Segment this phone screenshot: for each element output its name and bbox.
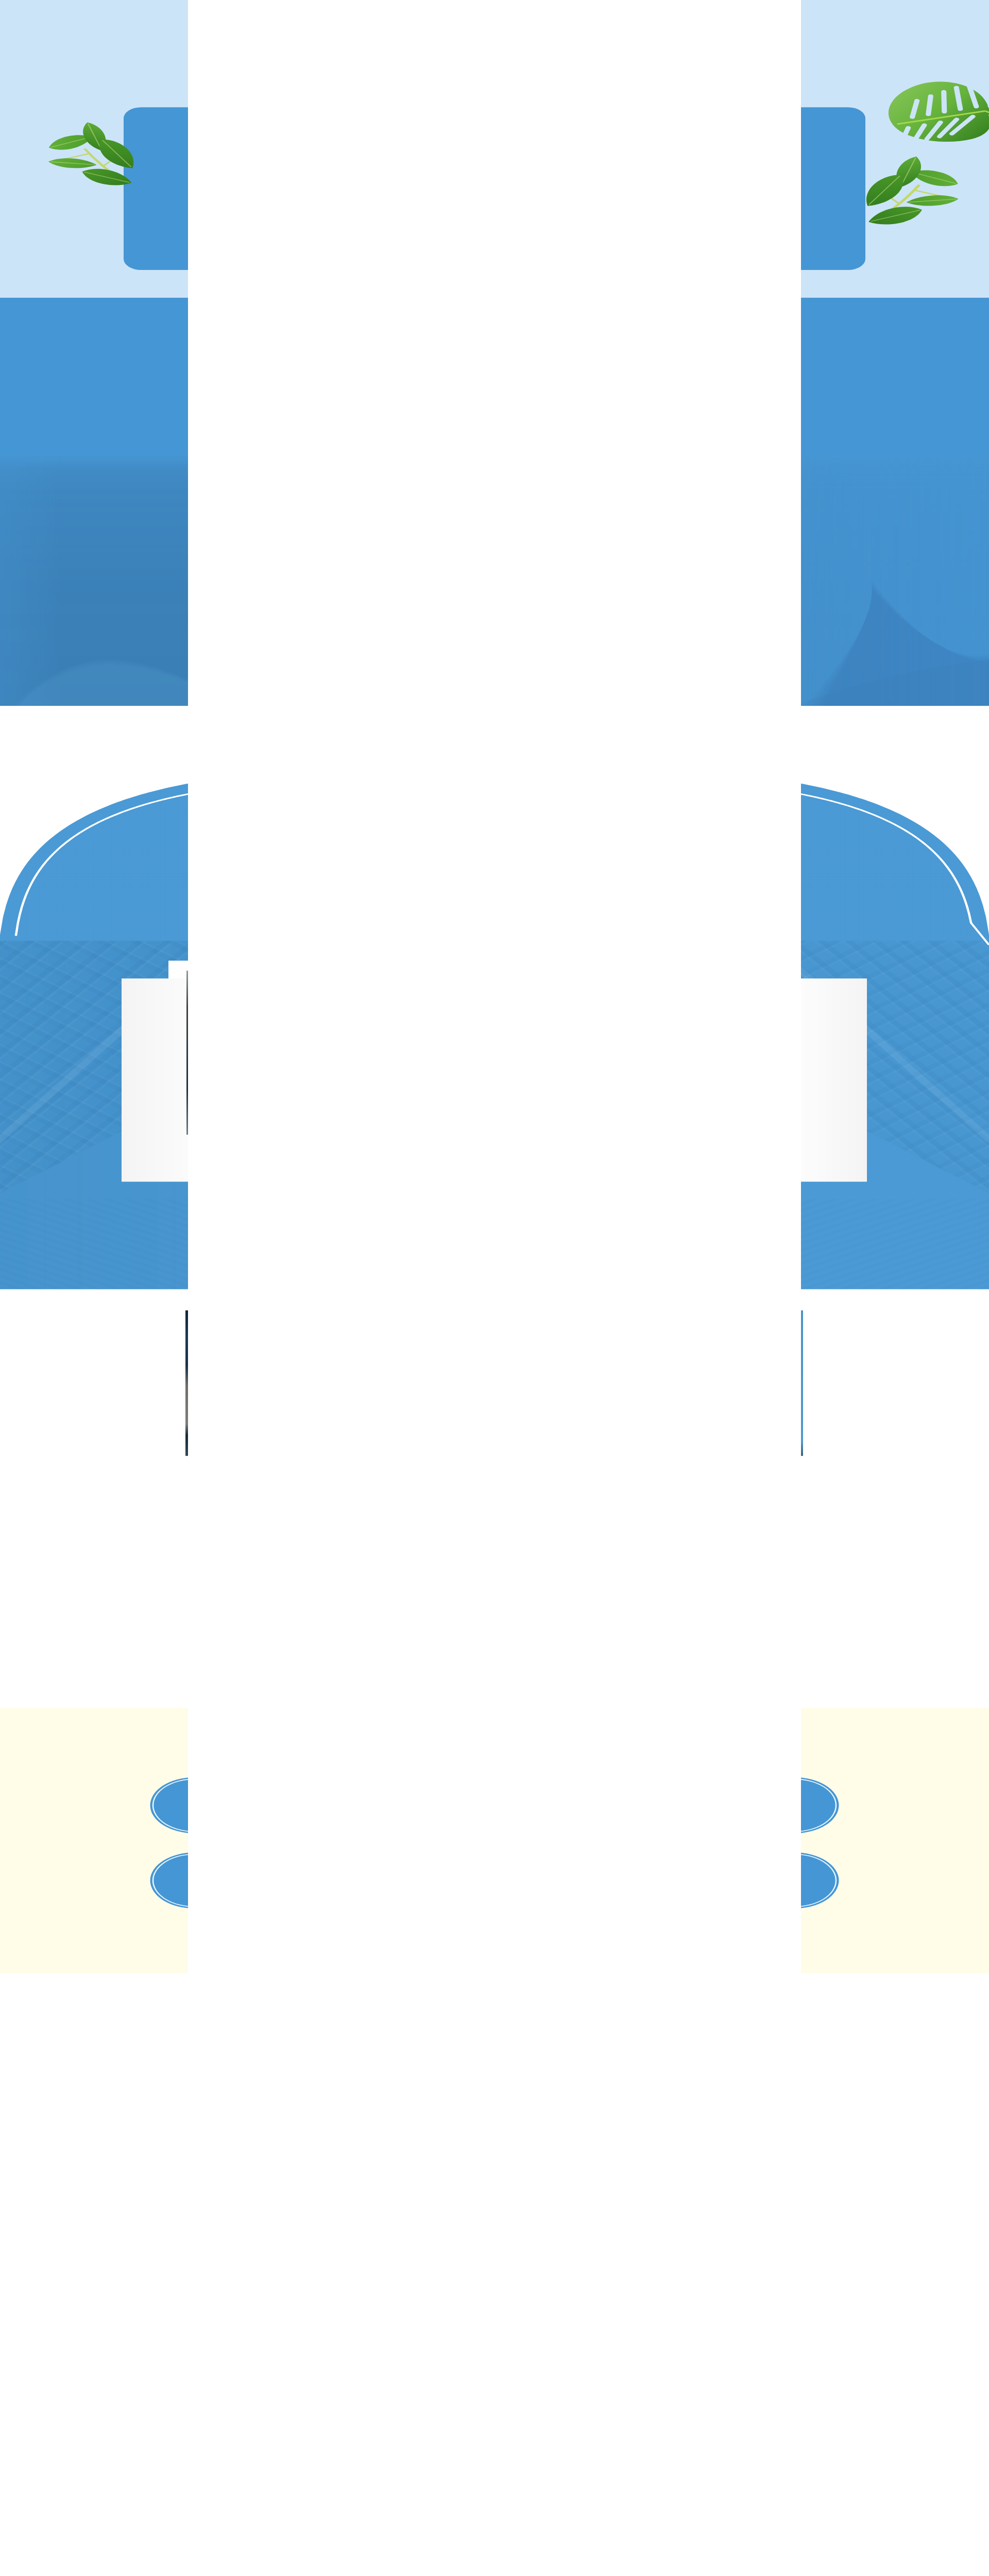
button[interactable]: Page <box>0 0 989 2576</box>
